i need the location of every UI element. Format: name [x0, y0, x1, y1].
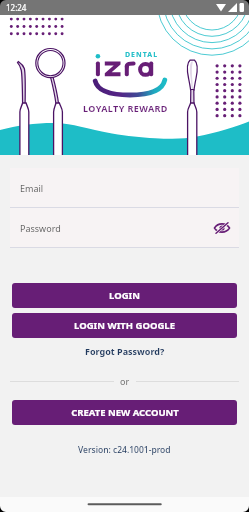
staticText: Version: c24.1001-prod: [78, 444, 171, 456]
staticText: Password: [20, 222, 61, 234]
button[interactable]: Show password: [213, 219, 231, 237]
staticText: Email: [20, 182, 44, 194]
button[interactable]: Password: [10, 208, 239, 247]
staticText: DENTAL: [125, 50, 159, 60]
staticText: LOGIN: [109, 289, 140, 302]
staticText: Forgot Password?: [85, 345, 165, 357]
button[interactable]: LOGIN: [12, 283, 237, 308]
button[interactable]: LOGIN WITH GOOGLE: [12, 313, 237, 338]
staticText: CREATE NEW ACCOUNT: [71, 406, 179, 419]
staticText: 12:24: [6, 2, 27, 13]
staticText: or: [120, 375, 130, 387]
staticText: LOYALTY REWARD: [83, 102, 168, 114]
button[interactable]: Forgot Password?: [75, 341, 175, 361]
staticText: LOGIN WITH GOOGLE: [74, 319, 175, 332]
button[interactable]: Email: [10, 168, 239, 207]
button[interactable]: CREATE NEW ACCOUNT: [12, 400, 237, 425]
